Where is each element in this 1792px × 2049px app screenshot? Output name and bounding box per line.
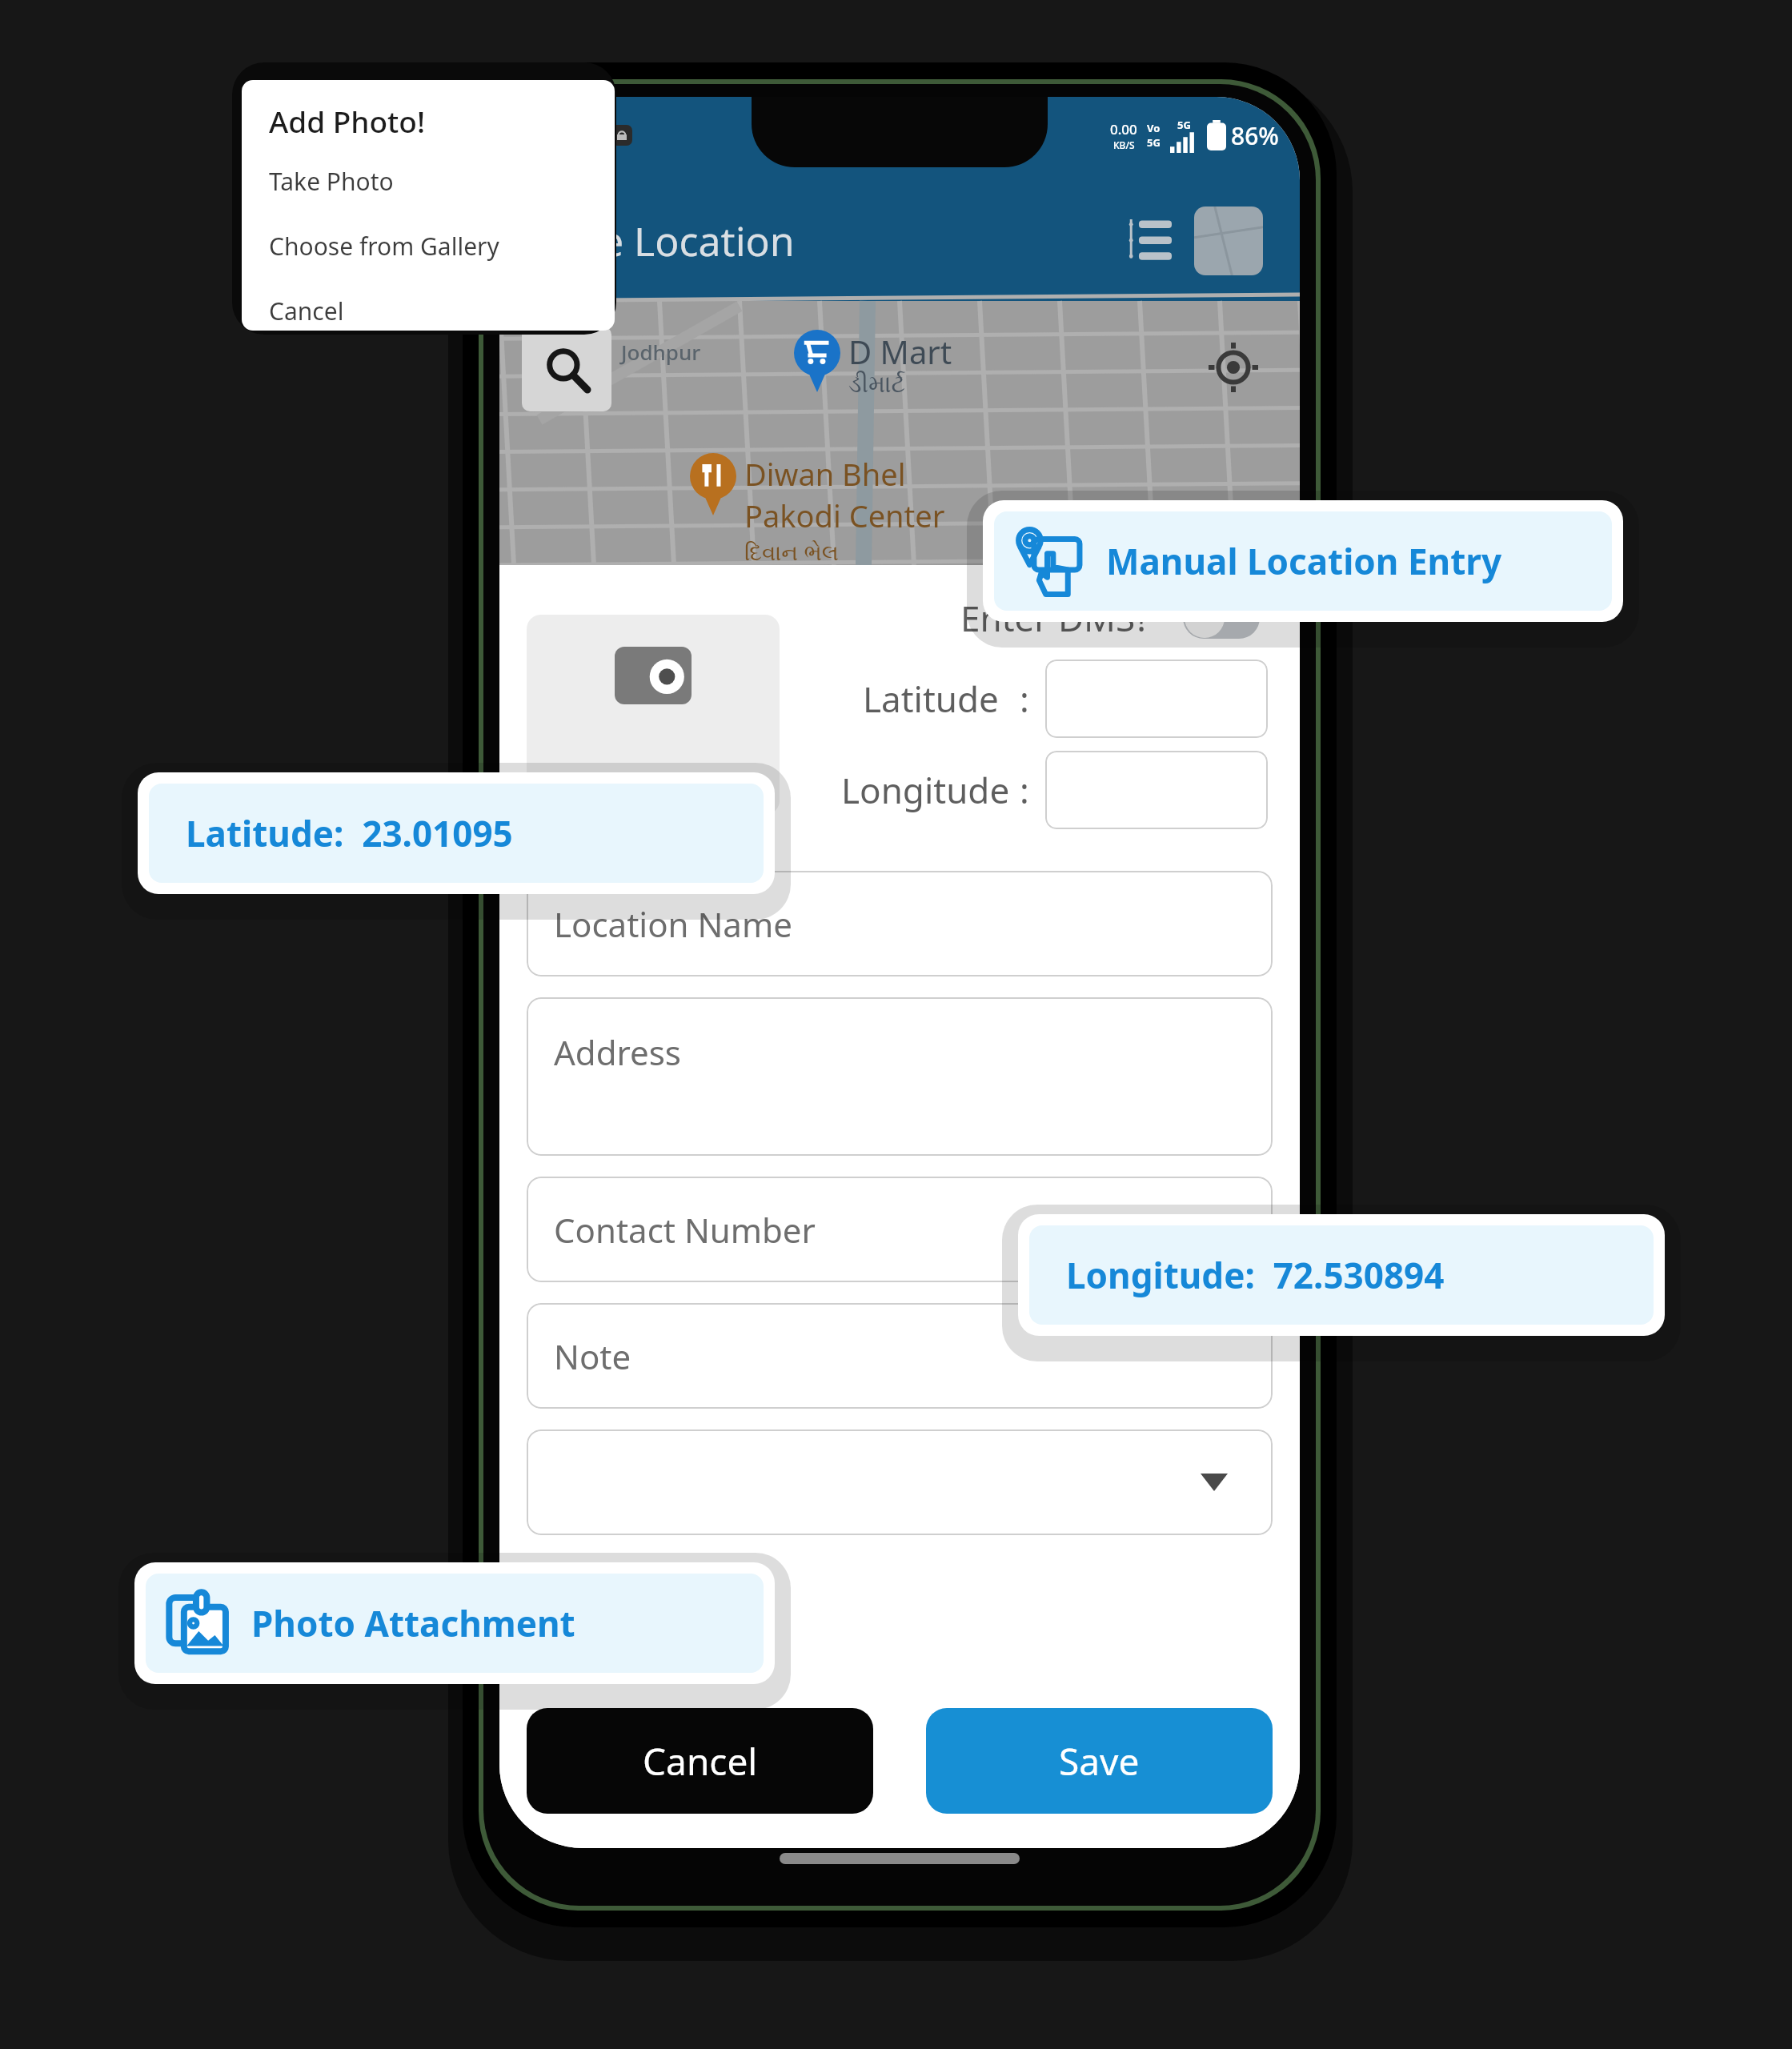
staticText: Photo Attachment [251, 1599, 575, 1647]
button[interactable]: Save [926, 1708, 1273, 1814]
button[interactable]: Cancel [527, 1708, 873, 1814]
staticText: : [1020, 675, 1029, 723]
button[interactable]: Search [522, 327, 611, 411]
button[interactable] [1045, 660, 1268, 738]
staticText: Manual Location Entry [1106, 537, 1502, 585]
staticText: Jodhpur [621, 338, 701, 366]
button[interactable]: Longitude: 72.530894 [1029, 1225, 1654, 1325]
button[interactable]: Photo Attachment [146, 1574, 764, 1673]
button[interactable]: Cancel [269, 295, 615, 327]
staticText: Longitude: 72.530894 [1066, 1251, 1445, 1299]
staticText: D Mart [848, 330, 952, 373]
button[interactable]: Latitude: 23.01095 [149, 784, 764, 883]
button[interactable]: Choose from Gallery [269, 230, 615, 263]
button[interactable]: Add photo [527, 615, 780, 815]
staticText: 86% [1231, 119, 1279, 152]
button[interactable] [1045, 751, 1268, 829]
staticText: Latitude [863, 675, 999, 723]
button[interactable]: Contact Number [527, 1177, 1273, 1282]
button[interactable]: Enter DMS? [960, 594, 1268, 642]
staticText: Pakodi Center [744, 495, 945, 536]
staticText: ડીમાર્ટ [848, 373, 906, 397]
staticText: દિવાન ભેલ [744, 536, 839, 567]
staticText: Latitude: 23.01095 [186, 809, 513, 857]
button[interactable]: Address [527, 997, 1273, 1156]
button[interactable]: Take Photo [269, 165, 615, 198]
staticText: Save Location [536, 214, 795, 268]
staticText: Cancel [643, 1736, 758, 1786]
staticText: Save [1059, 1736, 1140, 1786]
button[interactable]: Map type [1194, 207, 1263, 275]
staticText: Contact Number [554, 1207, 816, 1253]
button[interactable]: Saved locations list [1116, 207, 1185, 275]
staticText: Longitude [841, 766, 1010, 814]
staticText: KB/S [1113, 138, 1135, 151]
button[interactable]: Category dropdown [527, 1429, 1273, 1535]
staticText: : [1020, 766, 1029, 814]
button[interactable]: Location Name [527, 871, 1273, 976]
staticText: 5G [1177, 118, 1191, 132]
staticText: 0.00 [1110, 120, 1137, 138]
staticText: Vo [1147, 121, 1161, 135]
staticText: Note [554, 1333, 631, 1379]
staticText: Address [554, 1029, 681, 1075]
staticText: Location Name [554, 901, 792, 947]
staticText: Diwan Bhel [744, 453, 906, 495]
staticText: Enter DMS? [960, 594, 1151, 642]
staticText: Add Photo! [269, 101, 425, 141]
button[interactable]: Manual Location Entry [994, 511, 1612, 611]
button[interactable]: Note [527, 1303, 1273, 1409]
staticText: 5G [1147, 135, 1161, 150]
button[interactable]: My location [1196, 330, 1271, 405]
